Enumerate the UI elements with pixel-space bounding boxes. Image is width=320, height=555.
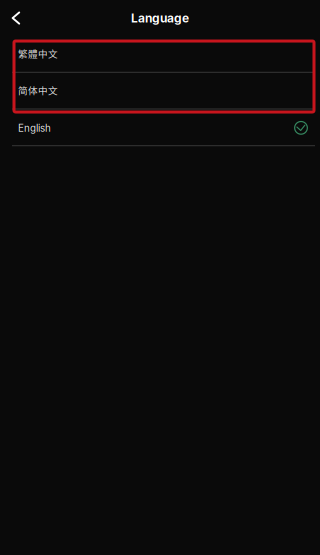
staticText: Language bbox=[131, 11, 189, 25]
staticText: 繁體中文 bbox=[18, 46, 58, 60]
button[interactable]: 繁體中文 bbox=[0, 36, 320, 73]
button[interactable]: Back bbox=[0, 0, 44, 36]
staticText: 简体中文 bbox=[18, 83, 58, 97]
staticText: English bbox=[18, 122, 51, 134]
button[interactable]: 简体中文 bbox=[0, 73, 320, 109]
button[interactable]: English bbox=[0, 109, 320, 146]
